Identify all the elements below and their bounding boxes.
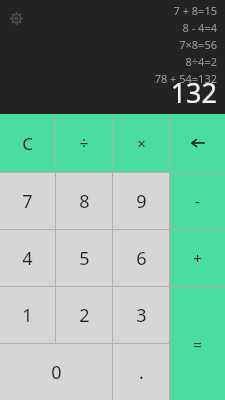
button[interactable]: 1 bbox=[0, 287, 55, 343]
staticText: × bbox=[137, 133, 146, 153]
staticText: ÷ bbox=[79, 132, 89, 154]
button[interactable]: Settings bbox=[6, 8, 26, 28]
button[interactable]: 0 bbox=[0, 344, 112, 400]
button[interactable]: . bbox=[113, 344, 169, 400]
button[interactable]: + bbox=[170, 230, 225, 286]
staticText: 8 - 4=4 bbox=[182, 20, 217, 35]
staticText: 8 bbox=[79, 189, 90, 214]
button[interactable]: 4 bbox=[0, 230, 55, 286]
button[interactable]: 6 bbox=[113, 230, 169, 286]
button[interactable]: 7 bbox=[0, 173, 55, 229]
button[interactable]: = bbox=[170, 287, 225, 400]
staticText: 1 bbox=[22, 303, 33, 328]
staticText: 3 bbox=[136, 303, 147, 328]
staticText: 5 bbox=[79, 246, 90, 271]
staticText: 8÷4=2 bbox=[185, 54, 217, 69]
staticText: 0 bbox=[51, 360, 62, 385]
button[interactable]: - bbox=[170, 173, 225, 229]
button[interactable]: ÷ bbox=[56, 114, 112, 172]
staticText: 132 bbox=[170, 74, 217, 111]
button[interactable]: 9 bbox=[113, 173, 169, 229]
button[interactable]: 2 bbox=[56, 287, 112, 343]
staticText: 7 bbox=[22, 189, 33, 214]
button[interactable]: × bbox=[113, 114, 169, 172]
button[interactable]: Backspace bbox=[170, 114, 225, 172]
button[interactable]: C bbox=[0, 114, 55, 172]
staticText: 7 + 8=15 bbox=[173, 3, 217, 18]
button[interactable]: 5 bbox=[56, 230, 112, 286]
staticText: 2 bbox=[79, 303, 90, 328]
staticText: = bbox=[193, 334, 202, 354]
staticText: . bbox=[139, 360, 144, 385]
staticText: 6 bbox=[136, 246, 147, 271]
staticText: C bbox=[22, 132, 33, 155]
staticText: 4 bbox=[22, 246, 33, 271]
staticText: 78 + 54=132 bbox=[154, 71, 217, 86]
staticText: - bbox=[195, 191, 200, 211]
staticText: 9 bbox=[136, 189, 147, 214]
button[interactable]: 8 bbox=[56, 173, 112, 229]
staticText: + bbox=[193, 248, 202, 268]
staticText: 7×8=56 bbox=[179, 37, 217, 52]
button[interactable]: 3 bbox=[113, 287, 169, 343]
